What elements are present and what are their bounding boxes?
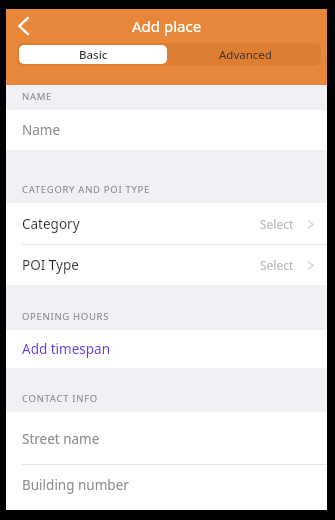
staticText: Building number bbox=[22, 476, 129, 494]
staticText: Select bbox=[260, 216, 294, 232]
staticText: NAME bbox=[22, 90, 52, 103]
staticText: Add place bbox=[132, 16, 202, 36]
staticText: Name bbox=[22, 121, 61, 139]
staticText: Category bbox=[22, 215, 260, 233]
staticText: CATEGORY AND POI TYPE bbox=[22, 183, 151, 196]
button[interactable]: Add timespan bbox=[6, 330, 327, 368]
button[interactable]: Name bbox=[6, 110, 327, 150]
button[interactable]: POI Type bbox=[6, 245, 327, 285]
button[interactable]: Street name bbox=[6, 412, 327, 465]
button[interactable]: Back bbox=[6, 9, 40, 43]
button[interactable]: Basic bbox=[19, 45, 167, 64]
staticText: Basic bbox=[79, 47, 108, 63]
staticText: Street name bbox=[22, 430, 100, 448]
staticText: Add timespan bbox=[22, 340, 111, 358]
staticText: Select bbox=[260, 257, 294, 273]
button[interactable]: Category bbox=[6, 203, 327, 245]
button[interactable]: Advanced bbox=[169, 43, 321, 66]
button[interactable]: Building number bbox=[6, 465, 327, 505]
staticText: POI Type bbox=[22, 256, 260, 274]
staticText: CONTACT INFO bbox=[22, 392, 98, 405]
staticText: Advanced bbox=[219, 47, 272, 63]
staticText: OPENING HOURS bbox=[22, 310, 110, 323]
